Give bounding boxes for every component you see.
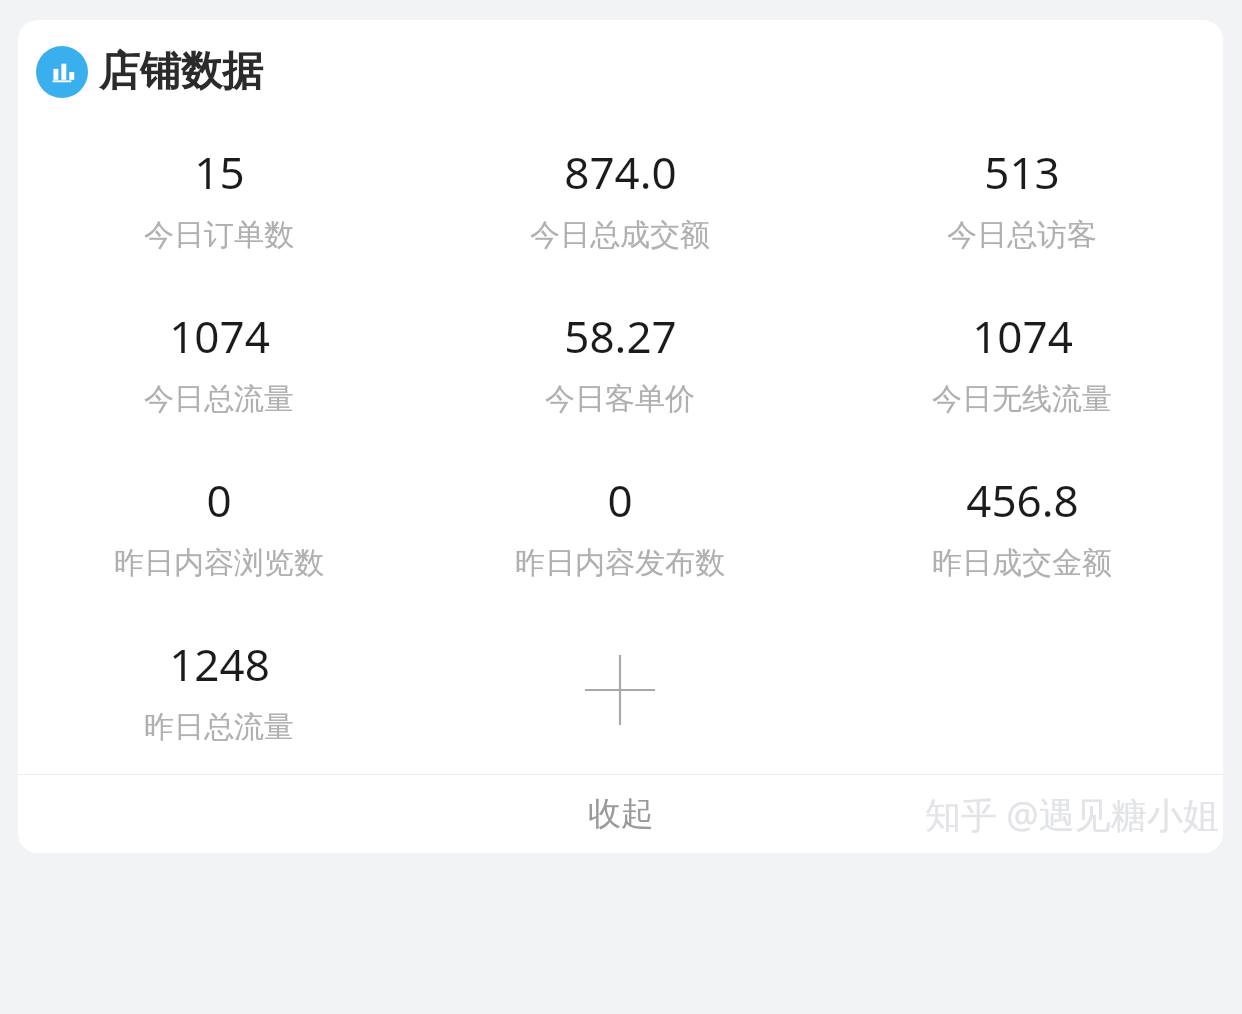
button[interactable]: 1074 xyxy=(932,306,1112,418)
staticText: 0 xyxy=(206,470,232,530)
staticText: 今日总成交额 xyxy=(530,216,710,254)
button[interactable]: 0 xyxy=(515,470,725,582)
staticText: 1074 xyxy=(972,306,1073,366)
staticText: 456.8 xyxy=(966,470,1079,530)
button[interactable]: 1248 xyxy=(144,634,294,746)
other: Shop data xyxy=(36,46,88,98)
staticText: 昨日成交金额 xyxy=(932,544,1112,582)
staticText: 知乎 @遇见糖小姐 xyxy=(925,790,1219,839)
button[interactable]: 15 xyxy=(144,142,294,254)
button[interactable]: Shop data xyxy=(36,46,1223,98)
button[interactable]: 收起 xyxy=(562,783,680,845)
staticText: 收起 xyxy=(588,793,654,835)
button[interactable]: Add metric xyxy=(572,642,668,738)
staticText: 店铺数据 xyxy=(99,46,263,98)
staticText: 874.0 xyxy=(564,142,677,202)
button[interactable]: 0 xyxy=(114,470,324,582)
button[interactable]: 58.27 xyxy=(545,306,695,418)
button[interactable]: 1074 xyxy=(144,306,294,418)
staticText: 昨日内容浏览数 xyxy=(114,544,324,582)
staticText: 今日总流量 xyxy=(144,380,294,418)
staticText: 昨日内容发布数 xyxy=(515,544,725,582)
staticText: 15 xyxy=(194,142,245,202)
staticText: 今日客单价 xyxy=(545,380,695,418)
staticText: 1248 xyxy=(169,634,270,694)
staticText: 今日总访客 xyxy=(947,216,1097,254)
staticText: 今日无线流量 xyxy=(932,380,1112,418)
staticText: 513 xyxy=(984,142,1060,202)
staticText: 0 xyxy=(607,470,633,530)
staticText: 昨日总流量 xyxy=(144,708,294,746)
staticText: 1074 xyxy=(169,306,270,366)
staticText: 58.27 xyxy=(564,306,677,366)
button[interactable]: 874.0 xyxy=(530,142,710,254)
staticText: 今日订单数 xyxy=(144,216,294,254)
button[interactable]: 456.8 xyxy=(932,470,1112,582)
button[interactable]: 513 xyxy=(947,142,1097,254)
